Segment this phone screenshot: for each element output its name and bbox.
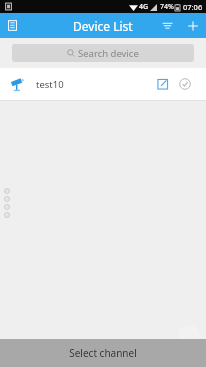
staticText: 4G (139, 2, 149, 12)
staticText: 07:06 (183, 2, 203, 12)
button[interactable]: Filter (154, 13, 180, 38)
staticText: 74% (160, 2, 174, 12)
staticText: Select channel (69, 346, 137, 360)
staticText: Device List (73, 18, 133, 34)
button[interactable]: Menu (0, 13, 25, 38)
button[interactable]: Select device (174, 73, 196, 95)
button[interactable]: Search device (12, 44, 194, 62)
staticText: Search device (78, 47, 139, 60)
button[interactable]: Add (180, 13, 206, 38)
button[interactable]: Add device (178, 325, 200, 347)
button[interactable]: Select channel (0, 339, 206, 367)
button[interactable]: test10 (0, 68, 206, 100)
staticText: test10 (36, 78, 64, 91)
button[interactable]: Edit device (152, 73, 174, 95)
